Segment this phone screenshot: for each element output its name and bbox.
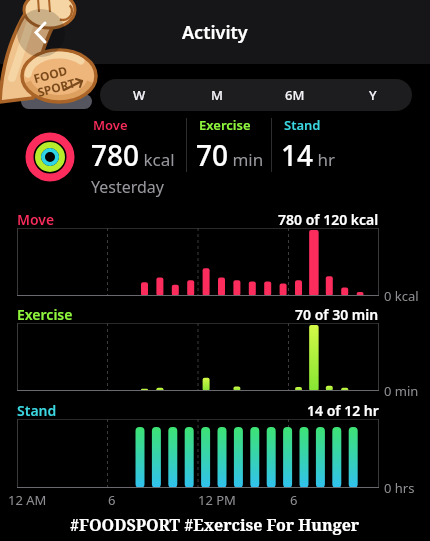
staticText: 0 kcal bbox=[384, 287, 419, 305]
staticText: #FOODSPORT #Exercise For Hunger bbox=[70, 514, 360, 536]
staticText: Move bbox=[17, 210, 55, 229]
staticText: Yesterday bbox=[91, 176, 165, 198]
staticText: Y bbox=[369, 86, 377, 104]
button[interactable]: #FOODSPORT #Exercise For Hunger bbox=[0, 509, 430, 541]
staticText: Stand bbox=[284, 116, 321, 134]
staticText: 70 min bbox=[196, 136, 264, 174]
staticText: 12 PM bbox=[198, 491, 236, 509]
button[interactable] bbox=[17, 9, 65, 57]
staticText: Exercise bbox=[17, 305, 73, 324]
staticText: 0 hrs bbox=[384, 479, 415, 497]
staticText: Exercise bbox=[199, 116, 251, 134]
button[interactable]: Y bbox=[334, 79, 412, 111]
staticText: 780 of 120 kcal bbox=[278, 210, 379, 228]
staticText: 70 of 30 min bbox=[295, 305, 379, 323]
staticText: 14 hr bbox=[281, 136, 335, 174]
button[interactable]: M bbox=[178, 79, 256, 111]
staticText: SPORT bbox=[36, 74, 77, 100]
staticText: Move bbox=[93, 116, 128, 134]
staticText: Activity bbox=[182, 20, 248, 45]
staticText: Stand bbox=[17, 401, 57, 420]
button[interactable]: 6M bbox=[256, 79, 334, 111]
button[interactable]: W bbox=[100, 79, 178, 111]
staticText: 6 bbox=[108, 491, 116, 509]
staticText: 780 kcal bbox=[91, 136, 175, 174]
staticText: FOOD bbox=[31, 62, 69, 86]
staticText: 6 bbox=[290, 491, 298, 509]
staticText: 6M bbox=[285, 86, 305, 104]
staticText: M bbox=[211, 86, 223, 104]
staticText: W bbox=[133, 86, 146, 104]
staticText: 12 AM bbox=[8, 491, 47, 509]
staticText: 14 of 12 hr bbox=[307, 401, 379, 419]
staticText: 0 min bbox=[384, 382, 419, 400]
